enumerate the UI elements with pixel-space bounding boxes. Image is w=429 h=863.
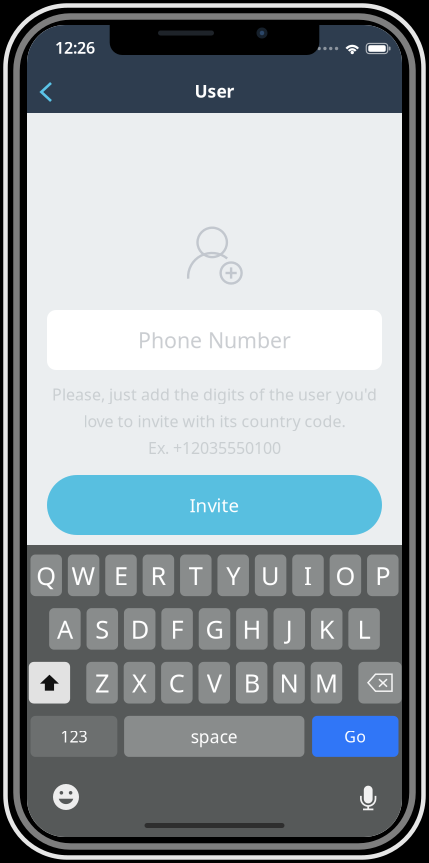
staticText: Invite	[189, 493, 239, 517]
button[interactable]: S	[87, 608, 118, 650]
button[interactable]: G	[199, 608, 230, 650]
button[interactable]: 123	[30, 716, 117, 757]
button[interactable]: Dictation	[360, 786, 377, 811]
button[interactable]: T	[180, 554, 211, 596]
staticText: C	[169, 666, 185, 699]
button[interactable]: Back	[24, 70, 68, 114]
staticText: D	[131, 612, 149, 646]
staticText: N	[280, 666, 299, 699]
staticText: User	[194, 79, 234, 102]
button[interactable]: X	[124, 662, 155, 703]
button[interactable]: Q	[30, 554, 62, 596]
button[interactable]: V	[198, 662, 230, 703]
staticText: B	[244, 666, 260, 699]
staticText: Q	[36, 558, 56, 592]
button[interactable]: U	[255, 554, 286, 596]
button[interactable]: O	[330, 554, 361, 596]
staticText: Please, just add the digits of the user …	[52, 384, 377, 405]
staticText: O	[335, 558, 355, 592]
staticText: love to invite with its country code.	[83, 410, 345, 432]
staticText: Phone Number	[138, 326, 291, 354]
staticText: T	[189, 558, 203, 592]
staticText: Go	[344, 726, 366, 747]
staticText: I	[303, 558, 312, 592]
staticText: J	[286, 612, 293, 646]
staticText: M	[315, 666, 338, 699]
button[interactable]: D	[124, 608, 155, 650]
button[interactable]: C	[161, 662, 193, 703]
button[interactable]: Invite	[47, 475, 382, 535]
button[interactable]: E	[105, 554, 137, 596]
staticText: L	[358, 612, 371, 646]
button[interactable]: Delete	[358, 662, 402, 703]
staticText: A	[57, 612, 73, 646]
staticText: W	[72, 558, 96, 592]
staticText: S	[95, 612, 109, 646]
staticText: H	[242, 612, 261, 646]
staticText: K	[319, 612, 335, 646]
button[interactable]: K	[311, 608, 342, 650]
staticText: Y	[226, 558, 240, 592]
staticText: P	[375, 558, 390, 592]
button[interactable]: F	[161, 608, 193, 650]
staticText: U	[261, 558, 280, 592]
button[interactable]: A	[49, 608, 81, 650]
button[interactable]: Emoji keyboard	[53, 784, 79, 810]
staticText: space	[191, 725, 238, 748]
staticText: Ex. +12035550100	[148, 437, 281, 458]
staticText: X	[132, 666, 147, 699]
staticText: F	[171, 612, 184, 646]
button[interactable]: space	[124, 716, 304, 757]
staticText: G	[205, 612, 223, 646]
staticText: R	[150, 558, 166, 592]
button[interactable]: R	[143, 554, 174, 596]
button[interactable]: M	[311, 662, 342, 703]
button[interactable]: J	[274, 608, 305, 650]
staticText: 12:26	[55, 37, 95, 58]
button[interactable]: Y	[217, 554, 249, 596]
button[interactable]: L	[348, 608, 380, 650]
button[interactable]: B	[236, 662, 267, 703]
staticText: E	[114, 558, 128, 592]
button[interactable]: Shift	[29, 662, 70, 703]
button[interactable]: P	[367, 554, 398, 596]
button[interactable]: Go	[312, 716, 398, 757]
button[interactable]: W	[68, 554, 99, 596]
staticText: Z	[95, 666, 109, 699]
button[interactable]: N	[273, 662, 305, 703]
staticText: 123	[60, 726, 87, 747]
staticText: V	[207, 666, 222, 699]
button[interactable]: I	[292, 554, 324, 596]
button[interactable]: Z	[86, 662, 118, 703]
button[interactable]: H	[236, 608, 268, 650]
